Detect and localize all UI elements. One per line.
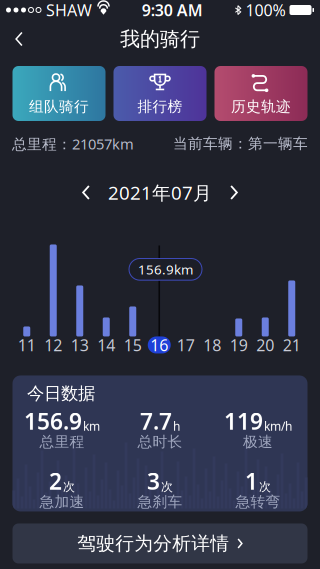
- staticText: 15: [124, 334, 142, 356]
- staticText: 次: [161, 479, 173, 494]
- staticText: 100%: [245, 0, 285, 21]
- staticText: 急加速: [39, 493, 84, 511]
- staticText: 156.9km: [138, 260, 193, 278]
- staticText: 3: [147, 466, 160, 496]
- button[interactable]: Previous month: [67, 177, 105, 207]
- staticText: 组队骑行: [29, 97, 89, 115]
- staticText: km: [83, 418, 100, 434]
- staticText: 20: [256, 334, 274, 356]
- staticText: 总时长: [137, 433, 182, 451]
- staticText: SHAW: [46, 0, 92, 21]
- staticText: 历史轨迹: [231, 97, 291, 115]
- staticText: 12: [44, 334, 62, 356]
- staticText: 我的骑行: [120, 27, 200, 51]
- staticText: 极速: [243, 433, 273, 451]
- staticText: 156.9: [24, 406, 82, 436]
- staticText: 13: [71, 334, 89, 356]
- staticText: 2: [49, 466, 62, 496]
- staticText: 今日数据: [27, 383, 95, 404]
- staticText: 总里程: [39, 433, 84, 451]
- staticText: 9:30 AM: [142, 0, 203, 21]
- staticText: 急转弯: [235, 493, 280, 511]
- staticText: 17: [177, 334, 195, 356]
- staticText: 19: [230, 334, 248, 356]
- staticText: 11: [18, 334, 36, 356]
- button[interactable]: Back: [0, 20, 38, 58]
- staticText: 排行榜: [137, 97, 182, 115]
- staticText: 21: [283, 334, 301, 356]
- button[interactable]: 历史轨迹: [214, 66, 307, 121]
- staticText: 119: [224, 406, 263, 436]
- staticText: 2021年07月: [108, 180, 212, 205]
- staticText: 急刹车: [137, 493, 182, 511]
- button[interactable]: Next month: [215, 177, 253, 207]
- button[interactable]: 排行榜: [113, 66, 206, 121]
- staticText: h: [173, 418, 180, 434]
- staticText: 次: [63, 479, 75, 494]
- staticText: 18: [203, 334, 221, 356]
- staticText: 驾驶行为分析详情: [77, 532, 229, 555]
- staticText: km/h: [264, 418, 292, 434]
- staticText: 16: [150, 334, 168, 356]
- staticText: 当前车辆：第一辆车: [173, 135, 308, 153]
- staticText: 14: [97, 334, 115, 356]
- staticText: 7.7: [140, 406, 172, 436]
- button[interactable]: 组队骑行: [12, 66, 105, 121]
- staticText: 次: [259, 479, 271, 494]
- button[interactable]: 驾驶行为分析详情: [12, 523, 307, 563]
- staticText: 总里程：21057km: [12, 134, 134, 153]
- staticText: 1: [245, 466, 258, 496]
